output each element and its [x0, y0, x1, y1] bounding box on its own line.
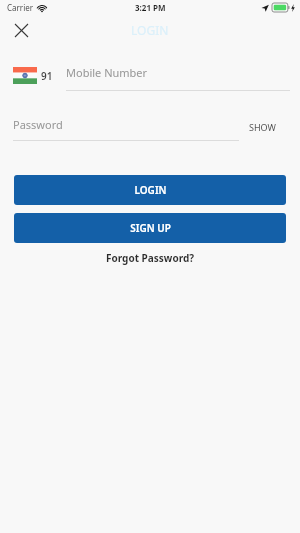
staticText: 3:21 PM — [135, 2, 166, 13]
button[interactable]: SHOW — [249, 121, 276, 133]
button[interactable]: Forgot Password? — [0, 251, 300, 265]
staticText: Forgot Password? — [106, 251, 195, 265]
button[interactable]: SIGN UP — [14, 213, 286, 243]
staticText: SHOW — [249, 121, 276, 133]
button[interactable]: Password — [13, 113, 239, 141]
button[interactable]: 91 — [13, 67, 53, 84]
staticText: Mobile Number — [66, 65, 148, 80]
button[interactable]: LOGIN — [14, 175, 286, 205]
staticText: 91 — [41, 69, 53, 83]
staticText: SIGN UP — [130, 221, 171, 235]
staticText: Password — [13, 117, 63, 132]
button[interactable]: Mobile Number — [66, 60, 290, 91]
staticText: Carrier — [7, 2, 34, 13]
staticText: LOGIN — [134, 183, 167, 197]
staticText: LOGIN — [131, 22, 169, 38]
button[interactable]: Close — [8, 17, 34, 43]
